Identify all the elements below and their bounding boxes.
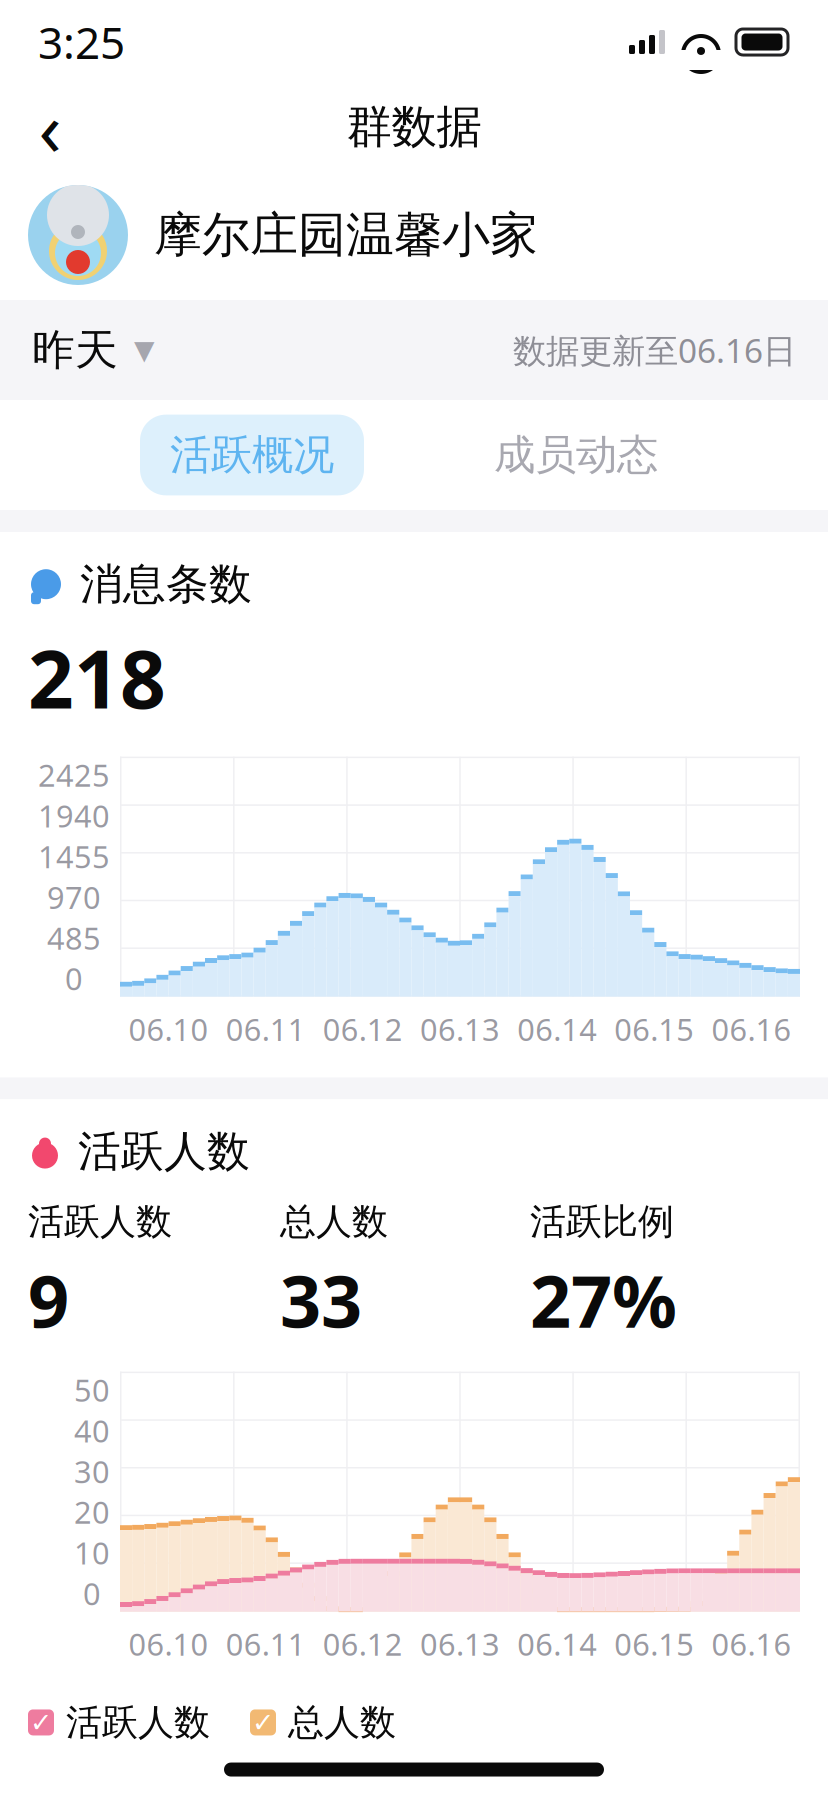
button[interactable]: 活跃概况: [140, 415, 364, 495]
staticText: ▼: [134, 335, 155, 365]
staticText: 总人数: [288, 1700, 396, 1744]
staticText: 昨天: [32, 324, 118, 376]
button[interactable]: ✓: [250, 1700, 396, 1744]
staticText: 06.11: [226, 1009, 306, 1049]
staticText: 06.12: [323, 1009, 403, 1049]
button[interactable]: 昨天: [32, 324, 155, 376]
staticText: 活跃人数: [78, 1125, 250, 1178]
staticText: 0: [65, 958, 83, 999]
staticText: 485: [47, 917, 101, 958]
staticText: 06.10: [129, 1624, 209, 1664]
staticText: 2425: [38, 754, 110, 795]
staticText: 218: [28, 624, 166, 731]
button[interactable]: 成员动态: [464, 415, 688, 495]
staticText: 9: [28, 1252, 69, 1348]
staticText: 06.13: [420, 1009, 500, 1049]
staticText: 成员动态: [494, 430, 658, 480]
staticText: 10: [74, 1532, 110, 1573]
staticText: 群数据: [346, 99, 481, 155]
staticText: 活跃比例: [530, 1200, 674, 1244]
staticText: 3:25: [38, 13, 125, 71]
staticText: 40: [74, 1410, 110, 1451]
button[interactable]: ✓: [28, 1700, 210, 1744]
staticText: ✓: [30, 1707, 52, 1738]
staticText: 06.13: [420, 1624, 500, 1664]
staticText: 06.16: [711, 1624, 791, 1664]
staticText: 活跃人数: [66, 1700, 210, 1744]
staticText: ✓: [252, 1707, 274, 1738]
staticText: 摩尔庄园温馨小家: [154, 205, 538, 264]
staticText: 50: [74, 1369, 110, 1410]
button[interactable]: Back: [18, 95, 82, 159]
staticText: 活跃概况: [170, 430, 334, 480]
staticText: 数据更新至06.16日: [513, 328, 796, 372]
staticText: 06.14: [517, 1624, 597, 1664]
staticText: 06.10: [129, 1009, 209, 1049]
staticText: 06.16: [711, 1009, 791, 1049]
staticText: 0: [83, 1573, 101, 1614]
staticText: 06.15: [614, 1624, 694, 1664]
staticText: 消息条数: [80, 558, 252, 610]
staticText: 30: [74, 1451, 110, 1492]
staticText: 1455: [38, 836, 110, 877]
staticText: 33: [280, 1252, 362, 1348]
staticText: 06.15: [614, 1009, 694, 1049]
staticText: 1940: [38, 795, 110, 836]
staticText: 总人数: [280, 1200, 388, 1244]
staticText: 970: [47, 877, 101, 917]
staticText: ‹: [38, 77, 61, 177]
staticText: 20: [74, 1492, 110, 1532]
staticText: 活跃人数: [28, 1200, 172, 1244]
staticText: 06.14: [517, 1009, 597, 1049]
staticText: 27%: [530, 1252, 677, 1348]
staticText: 06.12: [323, 1624, 403, 1664]
staticText: 06.11: [226, 1624, 306, 1664]
